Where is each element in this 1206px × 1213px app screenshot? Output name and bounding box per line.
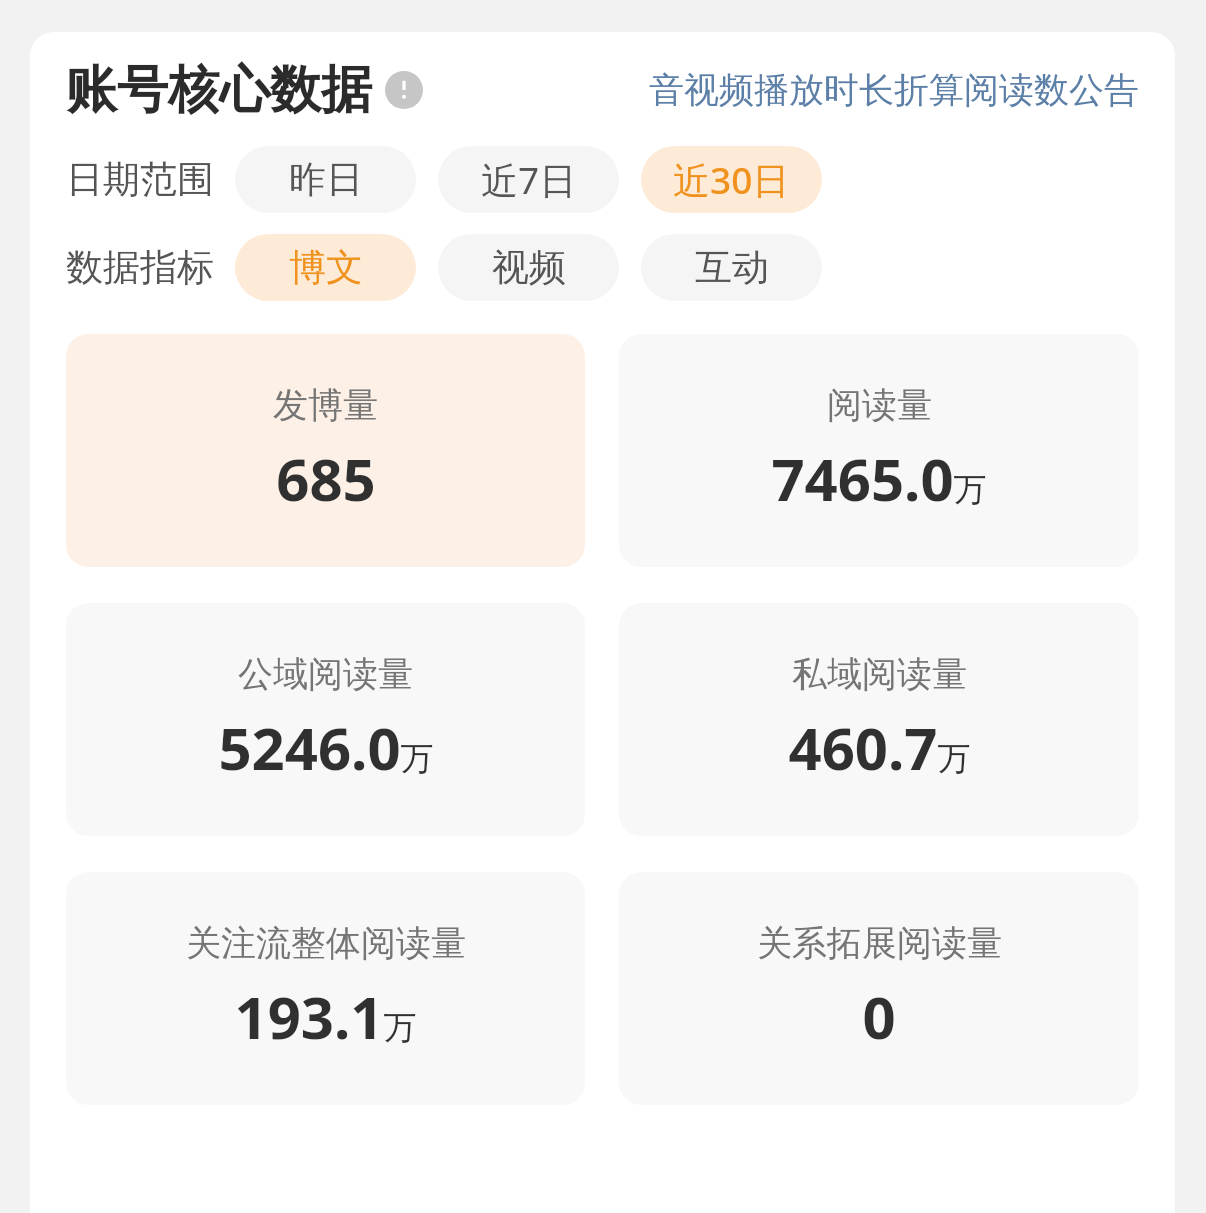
button[interactable]: 关系拓展阅读量: [619, 872, 1139, 1105]
staticText: 5246.0万: [218, 708, 434, 787]
button[interactable]: 公域阅读量: [66, 603, 585, 836]
staticText: 近30日: [673, 154, 790, 205]
staticText: 昨日: [289, 156, 363, 203]
staticText: 博文: [289, 244, 363, 291]
staticText: 视频: [492, 244, 566, 291]
button[interactable]: 近30日: [641, 146, 822, 213]
button[interactable]: 博文: [235, 234, 416, 301]
staticText: 互动: [695, 244, 769, 291]
button[interactable]: 关注流整体阅读量: [66, 872, 585, 1105]
staticText: 私域阅读量: [792, 652, 967, 696]
button[interactable]: 阅读量: [619, 334, 1139, 567]
button[interactable]: 说明: [384, 70, 424, 110]
staticText: 关系拓展阅读量: [757, 921, 1002, 965]
staticText: 日期范围: [66, 156, 214, 203]
button[interactable]: 私域阅读量: [619, 603, 1139, 836]
staticText: 音视频播放时长折算阅读数公告: [649, 68, 1139, 112]
button[interactable]: 近7日: [438, 146, 619, 213]
staticText: 685: [276, 439, 376, 518]
button[interactable]: 互动: [641, 234, 822, 301]
button[interactable]: 昨日: [235, 146, 416, 213]
staticText: 数据指标: [66, 244, 214, 291]
staticText: 账号核心数据: [66, 58, 372, 122]
staticText: 公域阅读量: [238, 652, 413, 696]
staticText: 阅读量: [827, 383, 932, 427]
button[interactable]: 发博量: [66, 334, 585, 567]
staticText: 460.7万: [788, 708, 971, 787]
staticText: 关注流整体阅读量: [186, 921, 466, 965]
button[interactable]: 音视频播放时长折算阅读数公告: [649, 68, 1167, 112]
staticText: 近7日: [481, 154, 577, 205]
staticText: 193.1万: [234, 977, 417, 1056]
staticText: 0: [862, 977, 896, 1056]
staticText: 7465.0万: [771, 439, 987, 518]
button[interactable]: 视频: [438, 234, 619, 301]
staticText: 发博量: [273, 383, 378, 427]
